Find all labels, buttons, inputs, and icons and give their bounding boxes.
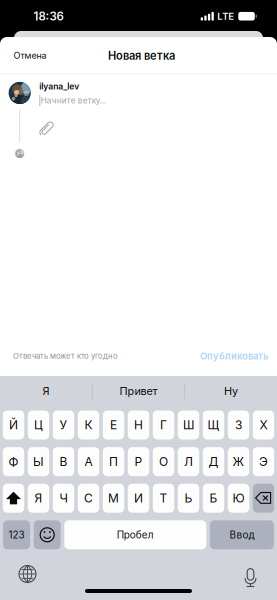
staticText: Пробел — [117, 529, 154, 540]
button[interactable]: В — [53, 447, 74, 476]
staticText: Начните ветку... — [41, 96, 106, 105]
button[interactable]: Я — [0, 376, 92, 406]
button[interactable]: Удалить — [253, 484, 274, 513]
button[interactable]: Эмодзи — [34, 520, 61, 549]
staticText: Новая ветка — [108, 50, 175, 62]
button[interactable]: А — [78, 447, 99, 476]
staticText: З — [235, 419, 242, 431]
staticText: С — [84, 492, 93, 505]
staticText: Ф — [8, 455, 18, 468]
button[interactable]: Ю — [228, 484, 249, 513]
button[interactable]: Я — [28, 484, 49, 513]
button[interactable]: З — [228, 410, 249, 439]
button[interactable]: Верхний регистр — [3, 484, 24, 513]
button[interactable]: Ну — [185, 376, 277, 406]
button[interactable]: Ж — [228, 447, 249, 476]
button[interactable]: Отмена — [0, 42, 58, 69]
staticText: Опубликовать — [200, 351, 268, 361]
button[interactable]: Л — [178, 447, 199, 476]
staticText: О — [159, 455, 168, 468]
staticText: ilyana_lev — [39, 82, 79, 91]
staticText: Ц — [34, 419, 43, 431]
button[interactable]: Б — [203, 484, 224, 513]
staticText: Р — [134, 455, 142, 468]
staticText: Отвечать может кто угодно — [13, 352, 118, 360]
button[interactable]: Пробел — [64, 520, 206, 549]
staticText: Й — [9, 419, 18, 431]
staticText: Ну — [224, 385, 238, 397]
staticText: Ввод — [229, 529, 254, 540]
staticText: Я — [34, 492, 42, 505]
staticText: Ш — [183, 419, 194, 431]
staticText: В — [59, 455, 67, 468]
button[interactable]: М — [103, 484, 124, 513]
button[interactable]: Диктовка — [240, 560, 261, 588]
button[interactable]: Прикрепить файл — [39, 106, 60, 136]
button[interactable]: Х — [253, 410, 274, 439]
staticText: Ь — [184, 492, 192, 505]
staticText: Ч — [59, 492, 67, 505]
staticText: Г — [160, 419, 167, 431]
button[interactable]: 123 — [3, 520, 30, 549]
button[interactable]: Опубликовать — [200, 344, 268, 368]
staticText: А — [84, 455, 92, 468]
button[interactable]: Э — [253, 447, 274, 476]
staticText: Н — [134, 419, 143, 431]
staticText: LTE — [217, 11, 234, 21]
button[interactable]: Ы — [28, 447, 49, 476]
staticText: Ю — [232, 492, 244, 505]
staticText: Т — [159, 492, 167, 505]
staticText: Д — [208, 455, 218, 468]
button[interactable]: Й — [3, 410, 24, 439]
staticText: Я — [42, 385, 49, 397]
staticText: 18:36 — [33, 10, 63, 22]
staticText: 123 — [9, 529, 25, 540]
button[interactable]: Привет — [93, 376, 184, 406]
button[interactable]: Н — [128, 410, 149, 439]
staticText: К — [84, 419, 92, 431]
staticText: П — [109, 455, 118, 468]
button[interactable]: Ввод — [210, 520, 274, 549]
staticText: М — [108, 492, 119, 505]
button[interactable]: Ц — [28, 410, 49, 439]
staticText: Привет — [119, 385, 157, 397]
staticText: Отмена — [13, 51, 46, 60]
staticText: Щ — [207, 419, 219, 431]
button[interactable]: Е — [103, 410, 124, 439]
button[interactable]: Щ — [203, 410, 224, 439]
staticText: Е — [110, 419, 117, 431]
staticText: И — [134, 492, 143, 505]
button[interactable]: О — [153, 447, 174, 476]
button[interactable]: Т — [153, 484, 174, 513]
button[interactable]: Д — [203, 447, 224, 476]
button[interactable]: Г — [153, 410, 174, 439]
staticText: Х — [259, 419, 267, 431]
button[interactable]: Ф — [3, 447, 24, 476]
button[interactable]: Отвечать может кто угодно — [13, 345, 118, 367]
button[interactable]: Ш — [178, 410, 199, 439]
button[interactable]: П — [103, 447, 124, 476]
button[interactable]: Следующая клавиатура — [14, 560, 41, 587]
button[interactable]: Р — [128, 447, 149, 476]
staticText: Б — [209, 492, 217, 505]
button[interactable]: С — [78, 484, 99, 513]
button[interactable]: И — [128, 484, 149, 513]
button[interactable]: Ь — [178, 484, 199, 513]
button[interactable]: Ч — [53, 484, 74, 513]
staticText: Ы — [33, 455, 44, 468]
button[interactable]: К — [78, 410, 99, 439]
button[interactable]: У — [53, 410, 74, 439]
staticText: Э — [259, 455, 268, 468]
staticText: Ж — [232, 455, 244, 468]
staticText: Л — [184, 455, 193, 468]
staticText: У — [59, 419, 67, 431]
